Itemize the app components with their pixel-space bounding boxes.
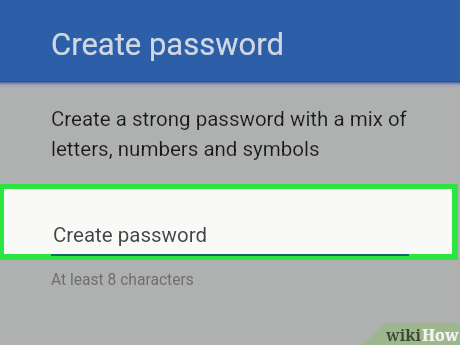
other: wikiHow watermark (0, 0, 460, 345)
button[interactable]: Create password (0, 0, 460, 81)
button[interactable]: Create password (4, 189, 452, 254)
staticText: How (422, 324, 459, 345)
staticText: wiki (386, 324, 422, 345)
staticText: At least 8 characters (51, 271, 194, 289)
staticText: Create a strong password with a mix of l… (51, 107, 407, 161)
staticText: Create password (53, 223, 208, 247)
staticText: Create password (51, 26, 284, 62)
